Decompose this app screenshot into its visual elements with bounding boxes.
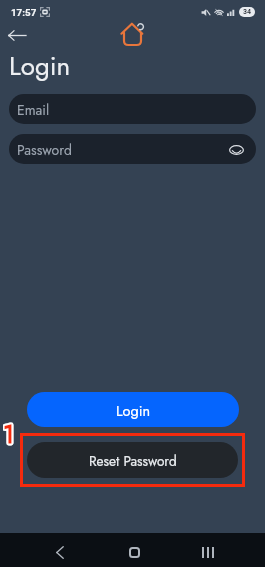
staticText: Email: [17, 100, 50, 120]
button[interactable]: Password: [9, 134, 256, 164]
staticText: 1: [3, 416, 15, 448]
button[interactable]: Email: [9, 94, 256, 124]
button[interactable]: Home: [114, 535, 154, 567]
button[interactable]: Show password: [227, 141, 245, 159]
staticText: 1: [3, 416, 15, 448]
staticText: Reset Password: [89, 451, 177, 471]
button[interactable]: Reset Password: [27, 442, 238, 478]
staticText: Login: [116, 400, 151, 421]
staticText: 34: [243, 8, 252, 16]
staticText: Password: [17, 140, 72, 160]
button[interactable]: Login: [27, 392, 239, 427]
button[interactable]: Back: [40, 535, 80, 567]
button[interactable]: Back: [4, 22, 30, 48]
staticText: Login: [9, 47, 71, 85]
staticText: 17:57: [11, 7, 37, 18]
button[interactable]: Recent apps: [188, 535, 228, 567]
